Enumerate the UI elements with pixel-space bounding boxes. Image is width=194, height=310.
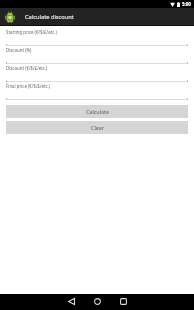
staticText: 5:00: [182, 1, 191, 7]
button[interactable]: Calculate: [6, 105, 188, 118]
button[interactable]: Discount (%): [6, 46, 188, 64]
button[interactable]: Home: [84, 293, 110, 309]
button[interactable]: Recents: [110, 293, 136, 309]
button[interactable]: Back: [58, 293, 84, 309]
staticText: Calculate: [86, 108, 109, 115]
staticText: Discount (€/$/£/etc.): [6, 65, 48, 71]
staticText: Clear: [91, 124, 104, 131]
button[interactable]: Discount (€/$/£/etc.): [6, 64, 188, 82]
button[interactable]: Final price (€/$/£/etc.): [6, 82, 188, 100]
staticText: Final price (€/$/£/etc.): [6, 83, 51, 89]
staticText: Starting price (€/$/£/etc.): [6, 29, 57, 35]
button[interactable]: Starting price (€/$/£/etc.): [6, 28, 188, 46]
staticText: Calculate discount: [25, 13, 74, 21]
button[interactable]: Clear: [6, 121, 188, 134]
staticText: Discount (%): [6, 47, 32, 53]
